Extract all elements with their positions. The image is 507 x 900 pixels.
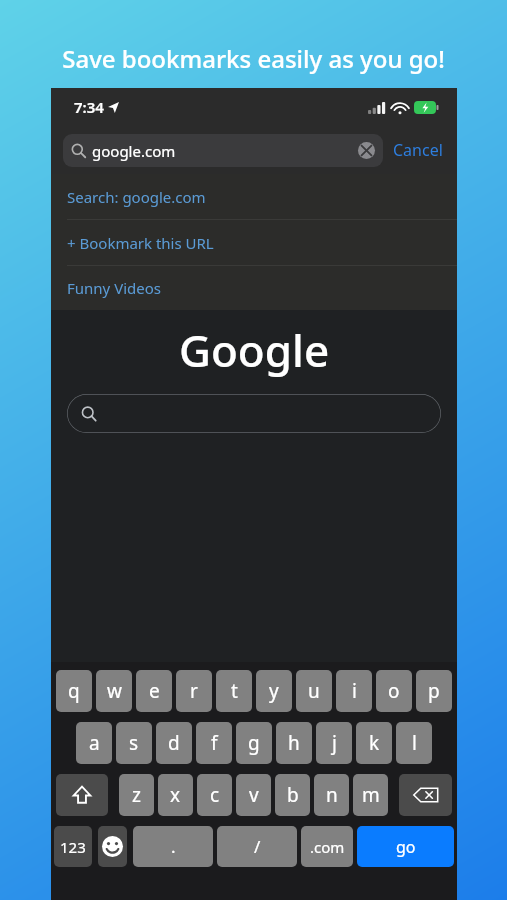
staticText: google.com — [92, 141, 358, 161]
button[interactable]: l — [396, 722, 432, 764]
button[interactable]: + Bookmark this URL — [51, 220, 457, 266]
button[interactable]: 123 — [54, 826, 92, 867]
button[interactable]: u — [296, 670, 332, 712]
staticText: x — [170, 782, 181, 808]
staticText: go — [396, 836, 416, 858]
staticText: o — [388, 678, 400, 704]
staticText: Save bookmarks easily as you go! — [0, 42, 507, 75]
button[interactable]: x — [158, 774, 193, 816]
button[interactable]: j — [316, 722, 352, 764]
staticText: a — [89, 730, 100, 756]
staticText: c — [210, 782, 220, 808]
button[interactable]: p — [416, 670, 452, 712]
button[interactable]: t — [216, 670, 252, 712]
button[interactable]: v — [236, 774, 271, 816]
staticText: Funny Videos — [67, 278, 161, 298]
staticText: t — [231, 678, 238, 704]
staticText: Google — [179, 320, 330, 380]
button[interactable]: Shift — [56, 774, 108, 816]
staticText: d — [168, 730, 180, 756]
staticText: f — [211, 730, 218, 756]
staticText: j — [332, 730, 337, 756]
button[interactable]: / — [217, 826, 297, 867]
button[interactable]: Clear text — [358, 142, 375, 159]
button[interactable]: g — [236, 722, 272, 764]
staticText: n — [326, 782, 338, 808]
button[interactable]: .com — [301, 826, 353, 867]
button[interactable]: Backspace — [399, 774, 452, 816]
staticText: p — [428, 678, 440, 704]
button[interactable]: n — [314, 774, 349, 816]
button[interactable]: w — [96, 670, 132, 712]
button[interactable]: k — [356, 722, 392, 764]
button[interactable]: z — [119, 774, 154, 816]
button[interactable]: Funny Videos — [51, 266, 457, 310]
staticText: y — [269, 678, 279, 704]
staticText: l — [412, 730, 417, 756]
staticText: 7:34 — [74, 97, 104, 117]
button[interactable]: h — [276, 722, 312, 764]
staticText: m — [362, 782, 380, 808]
button[interactable]: Emoji — [98, 826, 127, 867]
staticText: e — [149, 678, 160, 704]
staticText: k — [369, 730, 380, 756]
button[interactable]: go — [357, 826, 454, 867]
staticText: + Bookmark this URL — [67, 233, 214, 253]
staticText: . — [171, 835, 176, 858]
button[interactable]: m — [353, 774, 388, 816]
staticText: s — [129, 730, 139, 756]
button[interactable]: q — [56, 670, 92, 712]
staticText: h — [288, 730, 300, 756]
button[interactable]: b — [275, 774, 310, 816]
staticText: b — [287, 782, 299, 808]
staticText: g — [248, 730, 260, 756]
button[interactable]: d — [156, 722, 192, 764]
button[interactable]: . — [133, 826, 213, 867]
button[interactable]: c — [197, 774, 232, 816]
button[interactable]: s — [116, 722, 152, 764]
staticText: v — [249, 782, 259, 808]
staticText: .com — [310, 837, 345, 857]
button[interactable]: y — [256, 670, 292, 712]
staticText: z — [132, 782, 141, 808]
button[interactable]: a — [76, 722, 112, 764]
button[interactable]: google.com — [63, 134, 383, 167]
button[interactable]: Search: google.com — [51, 174, 457, 220]
button[interactable]: i — [336, 670, 372, 712]
staticText: u — [308, 678, 320, 704]
button[interactable] — [67, 394, 441, 433]
button[interactable]: e — [136, 670, 172, 712]
staticText: 123 — [60, 837, 86, 857]
button[interactable]: f — [196, 722, 232, 764]
staticText: Search: google.com — [67, 187, 206, 207]
button[interactable]: Cancel — [383, 133, 445, 167]
staticText: / — [254, 835, 261, 858]
staticText: w — [107, 678, 122, 704]
staticText: Cancel — [393, 139, 443, 161]
staticText: q — [68, 678, 80, 704]
button[interactable]: o — [376, 670, 412, 712]
staticText: r — [190, 678, 198, 704]
staticText: i — [352, 678, 357, 704]
button[interactable]: r — [176, 670, 212, 712]
